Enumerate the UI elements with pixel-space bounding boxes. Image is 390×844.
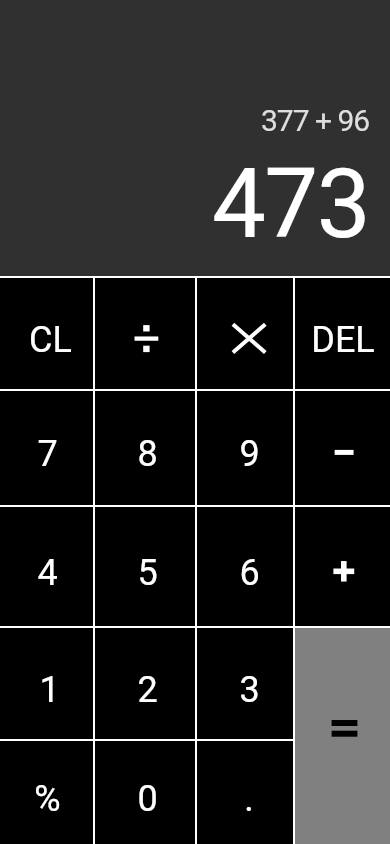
button[interactable]: Plus (295, 507, 390, 626)
button[interactable]: 6 (197, 507, 293, 626)
staticText: 0 (137, 778, 158, 820)
staticText: 2 (137, 669, 158, 711)
staticText: 3 (239, 669, 260, 711)
button[interactable]: Minus (295, 391, 390, 505)
button[interactable]: Equals (295, 628, 390, 844)
button[interactable]: DEL (295, 278, 390, 389)
staticText: 6 (239, 552, 260, 594)
staticText: 5 (137, 552, 158, 594)
staticText: 9 (239, 433, 260, 475)
button[interactable]: 7 (0, 391, 93, 505)
button[interactable]: . (197, 741, 293, 844)
button[interactable]: % (0, 741, 93, 844)
button[interactable]: Multiply (197, 278, 293, 389)
staticText: % (34, 778, 61, 820)
button[interactable]: 8 (95, 391, 195, 505)
staticText: 8 (137, 433, 158, 475)
staticText: 1 (39, 669, 60, 711)
staticText: 377 + 96 (261, 103, 370, 138)
button[interactable]: 0 (95, 741, 195, 844)
button[interactable]: 9 (197, 391, 293, 505)
button[interactable]: Divide (95, 278, 195, 389)
button[interactable]: 4 (0, 507, 93, 626)
staticText: . (244, 778, 254, 820)
staticText: DEL (311, 319, 375, 361)
button[interactable]: CL (0, 278, 93, 389)
staticText: 473 (212, 148, 370, 248)
staticText: 7 (37, 433, 58, 475)
button[interactable]: 3 (197, 628, 293, 739)
staticText: 4 (37, 552, 58, 594)
staticText: CL (29, 319, 72, 361)
button[interactable]: 5 (95, 507, 195, 626)
button[interactable]: 1 (0, 628, 93, 739)
button[interactable]: 2 (95, 628, 195, 739)
